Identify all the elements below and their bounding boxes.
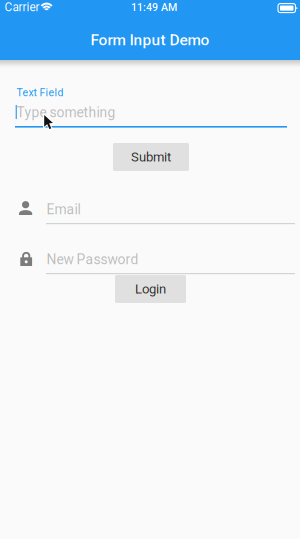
button[interactable]: Login xyxy=(115,275,186,303)
staticText: Submit xyxy=(131,149,171,165)
staticText: Email xyxy=(46,201,80,218)
staticText: Login xyxy=(135,281,166,297)
staticText: Text Field xyxy=(16,86,63,99)
button[interactable]: Submit xyxy=(113,143,189,171)
staticText: Form Input Demo xyxy=(90,31,209,49)
staticText: Type something xyxy=(16,104,115,121)
staticText: 11:49 AM xyxy=(131,1,177,14)
staticText: New Password xyxy=(46,251,138,268)
staticText: Carrier xyxy=(4,0,39,14)
